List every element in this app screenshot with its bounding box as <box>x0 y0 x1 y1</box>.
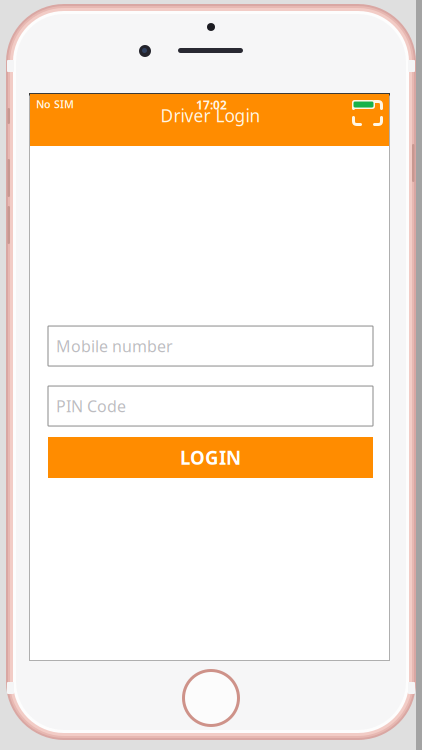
button[interactable]: Home <box>181 668 241 728</box>
staticText: No SIM <box>36 97 74 111</box>
button[interactable]: PIN Code <box>48 386 373 426</box>
staticText: Mobile number <box>56 335 173 357</box>
staticText: PIN Code <box>56 395 126 417</box>
button[interactable]: Mobile number <box>48 326 373 366</box>
staticText: LOGIN <box>180 445 241 470</box>
staticText: 17:02 <box>196 97 227 113</box>
button[interactable]: LOGIN <box>48 437 373 478</box>
staticText: Driver Login <box>160 104 260 127</box>
